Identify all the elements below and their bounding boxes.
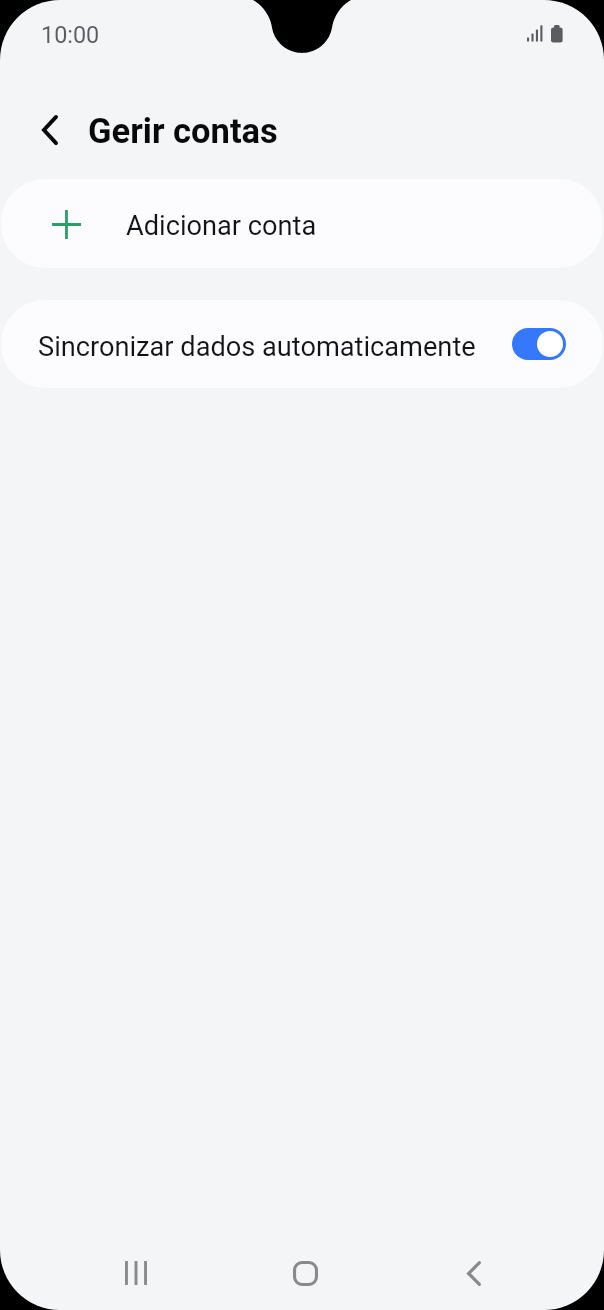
button[interactable]: Recent apps — [80, 1236, 192, 1310]
button[interactable]: Back — [418, 1236, 530, 1310]
button[interactable]: Sincronizar dados automaticamente — [1, 300, 603, 388]
staticText: Gerir contas — [88, 111, 278, 151]
staticText: Sincronizar dados automaticamente — [38, 331, 476, 363]
button[interactable]: Adicionar conta — [1, 179, 603, 268]
button[interactable]: Home — [249, 1236, 361, 1310]
staticText: Adicionar conta — [126, 210, 317, 242]
staticText: 10:00 — [41, 21, 100, 48]
button[interactable]: Back — [27, 107, 72, 152]
button[interactable]: Sincronizar dados automaticamente — [512, 328, 566, 360]
